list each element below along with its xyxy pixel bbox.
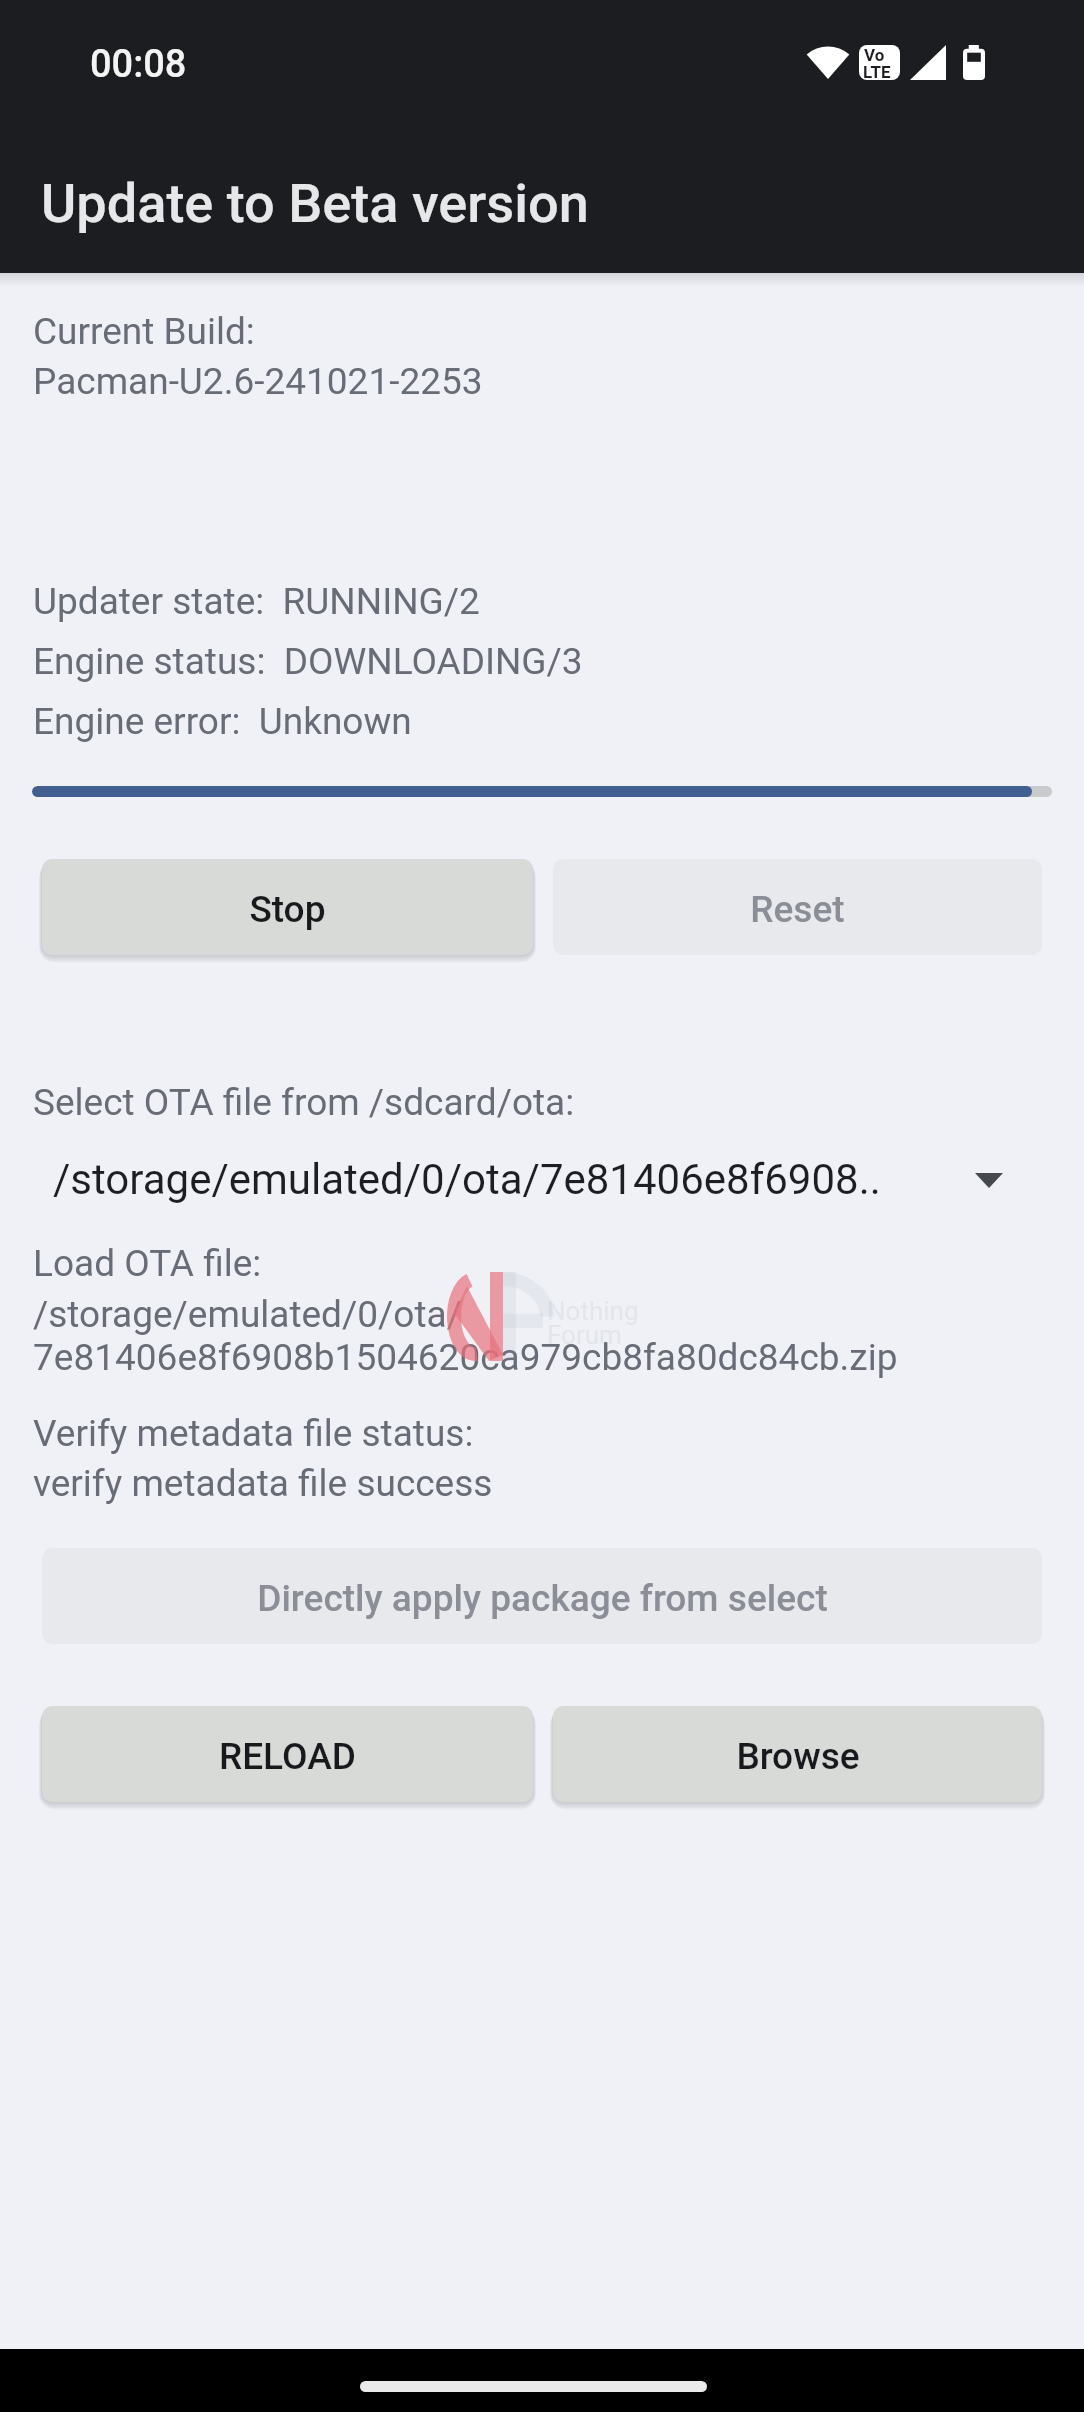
other: Battery: [963, 45, 985, 80]
staticText: Nothing: [547, 1296, 639, 1326]
staticText: 00:08: [90, 42, 187, 87]
other: Navigation bar: [0, 2349, 1084, 2412]
staticText: Directly apply package from select: [257, 1577, 828, 1620]
staticText: Engine error: Unknown: [33, 700, 412, 743]
staticText: RELOAD: [219, 1735, 356, 1778]
staticText: /storage/emulated/0/ota/7e81406e8f6908..: [53, 1155, 881, 1204]
staticText: Reset: [750, 888, 845, 931]
staticText: LTE: [863, 62, 891, 80]
other: Wi-Fi: [808, 45, 848, 79]
button[interactable]: Reset: [553, 859, 1042, 955]
staticText: Select OTA file from /sdcard/ota:: [33, 1081, 575, 1124]
button[interactable]: Browse: [553, 1706, 1042, 1802]
button[interactable]: RELOAD: [42, 1706, 533, 1802]
staticText: Pacman-U2.6-241021-2253: [33, 360, 483, 403]
other: VoLTE: [859, 45, 900, 80]
staticText: Engine status: DOWNLOADING/3: [33, 640, 583, 683]
staticText: Updater state: RUNNING/2: [33, 580, 480, 623]
staticText: Browse: [736, 1735, 860, 1778]
staticText: Forum: [547, 1320, 622, 1350]
staticText: Update to Beta version: [41, 172, 589, 235]
staticText: Stop: [249, 888, 326, 931]
staticText: Current Build:: [33, 310, 255, 353]
staticText: /storage/emulated/0/ota/: [33, 1293, 462, 1336]
staticText: Vo: [864, 45, 885, 65]
other: Open OTA file dropdown: [975, 1173, 1003, 1188]
button[interactable]: Stop: [42, 859, 533, 955]
staticText: verify metadata file success: [33, 1462, 493, 1505]
button[interactable]: Directly apply package from select: [42, 1548, 1042, 1644]
staticText: 7e81406e8f6908b1504620ca979cb8fa80dc84cb…: [33, 1336, 898, 1379]
button[interactable]: /storage/emulated/0/ota/7e81406e8f6908..: [32, 1144, 1052, 1218]
staticText: Verify metadata file status:: [33, 1412, 474, 1455]
other: Mobile signal: [910, 45, 946, 80]
staticText: Load OTA file:: [33, 1242, 262, 1285]
